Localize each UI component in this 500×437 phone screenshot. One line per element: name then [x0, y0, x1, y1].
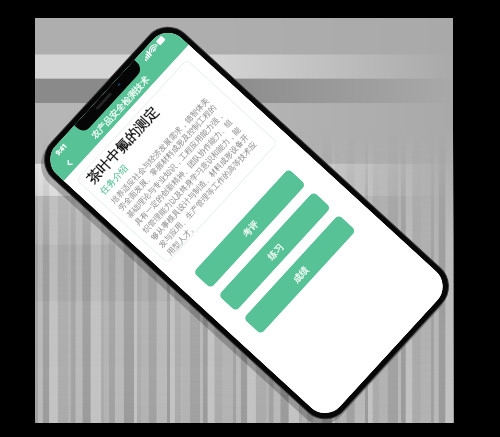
staticText: 练习	[265, 241, 285, 262]
button[interactable]: 成绩	[243, 214, 356, 335]
button[interactable]: Back	[57, 151, 81, 174]
button[interactable]: 练习	[218, 191, 331, 312]
staticText: 任务介绍	[97, 162, 130, 196]
staticText: 培养适应社会与经济发展需求，德智体美劳全面发展、掌握材料成形及控制工程的基础理论…	[108, 90, 272, 257]
staticText: 茶叶中氟的测定	[83, 104, 163, 188]
staticText: 成绩	[290, 264, 311, 285]
staticText: 考评	[240, 218, 260, 239]
staticText: 农产品安全检测技术	[89, 74, 151, 141]
staticText: 9:41	[53, 141, 69, 157]
button[interactable]: 考评	[193, 168, 306, 289]
